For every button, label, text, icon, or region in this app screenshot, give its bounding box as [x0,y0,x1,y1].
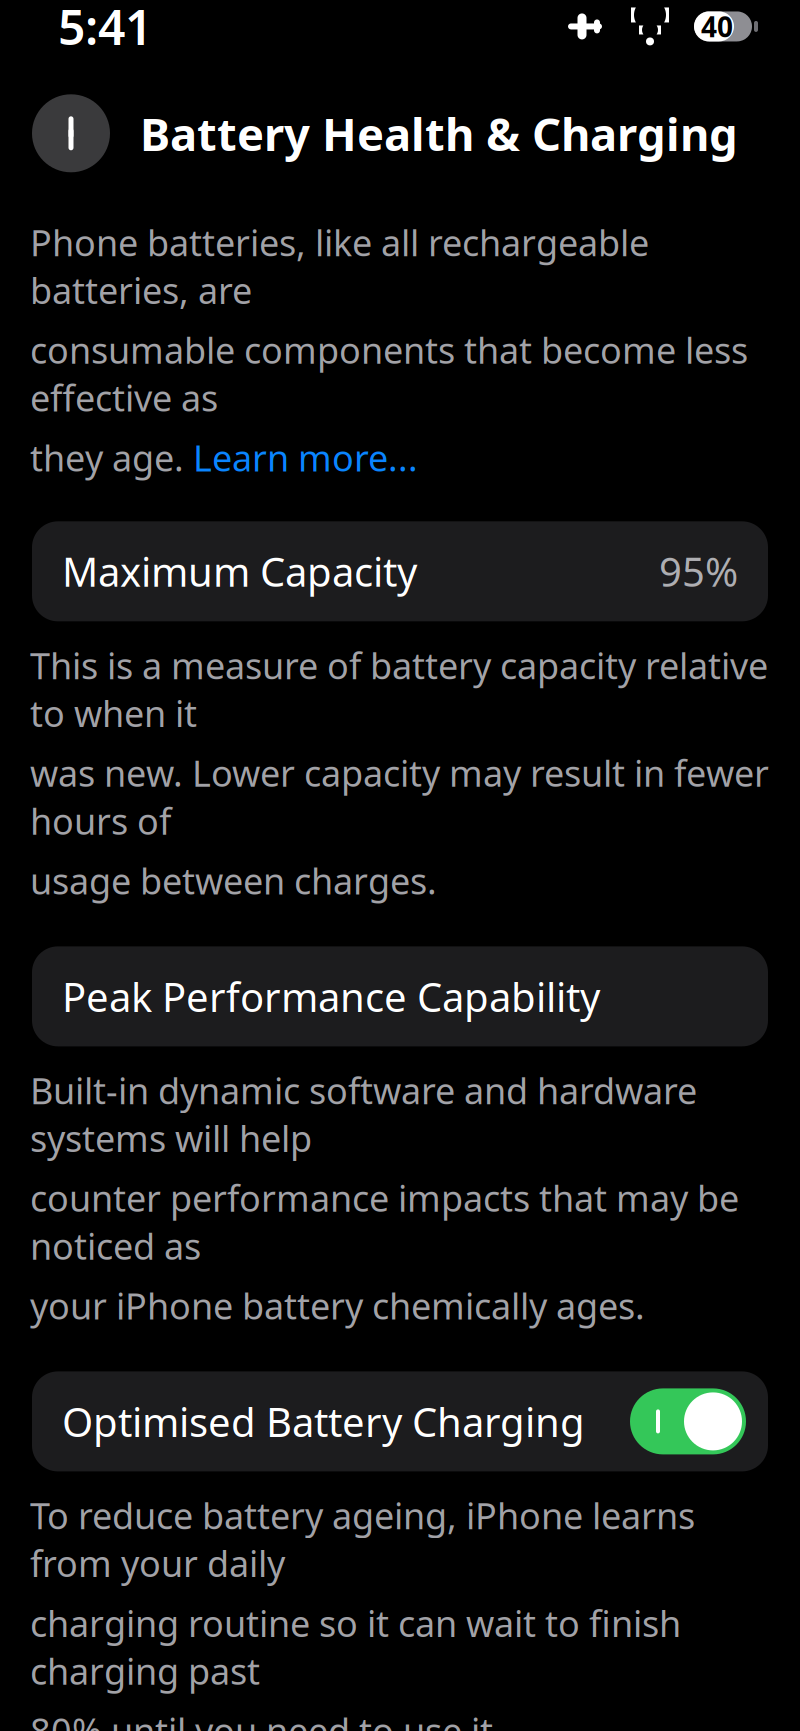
button[interactable]: Maximum Capacity [32,521,768,621]
staticText: was new. Lower capacity may result in fe… [30,749,769,845]
button[interactable]: Learn more... [193,433,418,481]
staticText: 5:41 [58,0,152,58]
staticText: Phone batteries, like all rechargeable b… [30,218,649,314]
staticText: your iPhone battery chemically ages. [30,1282,645,1329]
staticText: This is a measure of battery capacity re… [30,641,768,737]
button[interactable]: Back [32,94,110,172]
staticText: counter performance impacts that may be … [30,1174,739,1270]
button[interactable]: Optimised Battery Charging [32,1371,768,1471]
staticText: 80% until you need to use it. [30,1707,503,1731]
button[interactable]: Peak Performance Capability [32,946,768,1046]
staticText: consumable components that become less e… [30,326,748,421]
staticText: 95% [659,545,738,598]
staticText: Learn more... [193,433,418,481]
staticText: Battery Health & Charging [140,103,738,163]
staticText: Built-in dynamic software and hardware s… [30,1066,697,1162]
staticText: To reduce battery ageing, iPhone learns … [30,1491,695,1587]
staticText: 40 [701,8,733,45]
staticText: Peak Performance Capability [62,970,600,1023]
staticText: usage between charges. [30,857,437,904]
staticText: they age. [30,433,193,481]
staticText: Optimised Battery Charging [62,1395,585,1448]
staticText: charging routine so it can wait to finis… [30,1599,681,1695]
staticText: Maximum Capacity [62,545,417,598]
